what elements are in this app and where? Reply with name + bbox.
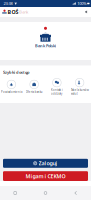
button[interactable]: Recents bbox=[0, 192, 30, 194]
staticText: Szybki dostęp bbox=[3, 69, 30, 75]
staticText: Oferta banku bbox=[26, 90, 43, 94]
button[interactable]: Oferta banku bbox=[23, 80, 46, 94]
staticText: Tabela kursów walut bbox=[71, 88, 89, 95]
staticText: Bank bbox=[19, 9, 28, 15]
staticText: Zaloguj bbox=[39, 160, 58, 167]
button[interactable]: Powiadomienia bbox=[0, 80, 23, 94]
staticText: 100% bbox=[77, 1, 86, 6]
staticText: BOŚ bbox=[7, 8, 18, 16]
button[interactable]: Migam i CEKMO bbox=[3, 171, 88, 181]
button[interactable]: Zaloguj bbox=[3, 159, 88, 168]
button[interactable]: Back bbox=[61, 191, 91, 195]
staticText: 23:38 bbox=[3, 1, 12, 6]
staticText: Migam i CEKMO bbox=[25, 173, 65, 180]
button[interactable]: Home bbox=[30, 192, 61, 194]
staticText: Powiadomienia bbox=[1, 90, 22, 94]
button[interactable]: Tabela kursów walut bbox=[68, 78, 91, 95]
staticText: Bank Polski bbox=[35, 43, 56, 48]
staticText: Kontakt i oddziały bbox=[51, 88, 63, 95]
button[interactable]: Sound bbox=[85, 10, 88, 14]
button[interactable]: Kontakt i oddziały bbox=[45, 78, 68, 95]
